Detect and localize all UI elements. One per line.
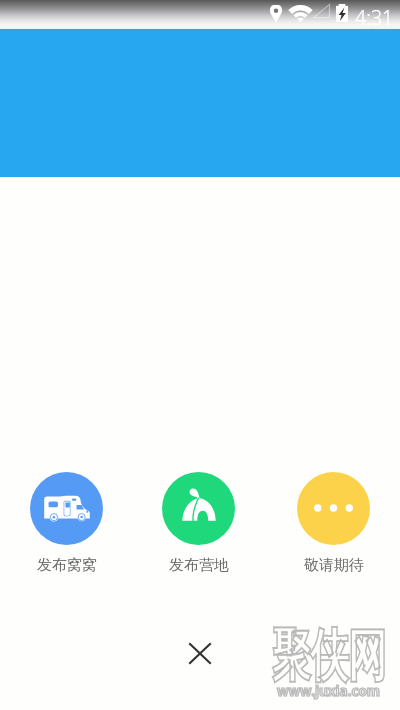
staticText: www.juxia.com <box>277 682 381 700</box>
button[interactable]: 敬请期待 <box>297 472 370 575</box>
staticText: 发布营地 <box>169 556 229 575</box>
button[interactable]: 发布营地 <box>162 472 235 575</box>
button[interactable]: 发布窝窝 <box>30 472 103 575</box>
staticText: 发布窝窝 <box>37 556 97 575</box>
button[interactable]: Close <box>176 629 224 677</box>
staticText: 敬请期待 <box>304 556 364 575</box>
staticText: 聚侠网 <box>272 620 386 691</box>
staticText: 4:31 <box>355 4 394 31</box>
